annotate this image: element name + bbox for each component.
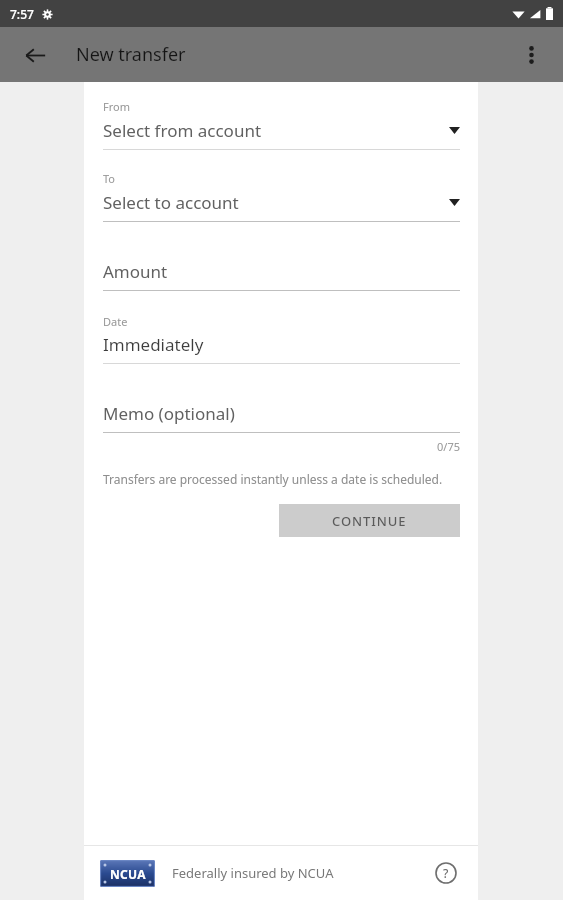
staticText: Federally insured by NCUA bbox=[172, 864, 334, 882]
button[interactable]: Memo (optional) bbox=[103, 402, 460, 433]
staticText: From bbox=[103, 99, 130, 114]
button[interactable]: Select to account bbox=[103, 191, 460, 222]
staticText: Select to account bbox=[103, 191, 239, 214]
staticText: Transfers are processed instantly unless… bbox=[103, 471, 443, 487]
staticText: Memo (optional) bbox=[103, 402, 235, 425]
staticText: 0/75 bbox=[103, 439, 460, 454]
staticText: Immediately bbox=[103, 333, 204, 356]
staticText: Amount bbox=[103, 260, 168, 283]
staticText: Date bbox=[103, 314, 128, 329]
button[interactable]: CONTINUE bbox=[279, 504, 460, 537]
staticText: New transfer bbox=[76, 42, 186, 67]
button[interactable]: Help bbox=[428, 855, 464, 891]
button[interactable]: Immediately bbox=[103, 333, 460, 364]
button[interactable]: More options bbox=[511, 35, 551, 75]
staticText: 7:57 bbox=[10, 6, 34, 22]
staticText: ? bbox=[443, 865, 449, 881]
staticText: NCUA bbox=[110, 866, 146, 882]
button[interactable]: Select from account bbox=[103, 119, 460, 150]
button[interactable]: Back bbox=[14, 34, 56, 76]
staticText: Select from account bbox=[103, 119, 262, 142]
staticText: To bbox=[103, 171, 116, 186]
button[interactable]: Amount bbox=[103, 260, 460, 291]
staticText: CONTINUE bbox=[332, 512, 407, 530]
